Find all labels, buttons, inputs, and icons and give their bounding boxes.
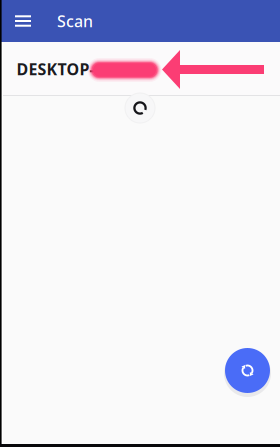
button[interactable]: Refresh: [225, 348, 270, 393]
staticText: Scan: [57, 10, 93, 32]
button[interactable]: Menu: [5, 0, 41, 42]
staticText: DESKTOP-: [16, 58, 94, 80]
